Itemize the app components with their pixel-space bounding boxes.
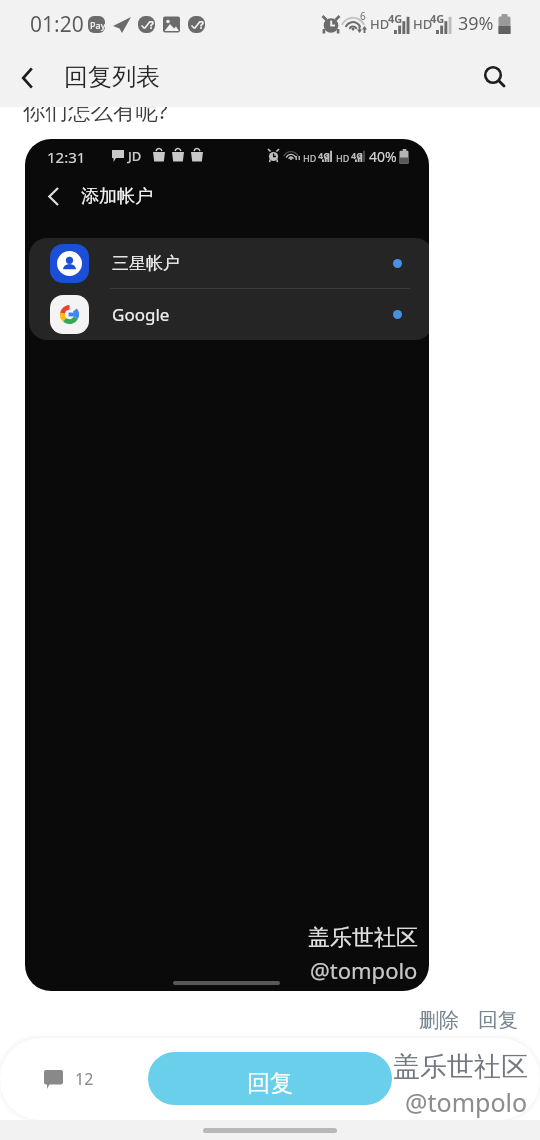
staticText: 盖乐世社区 (308, 924, 418, 952)
staticText: HD (370, 15, 390, 33)
button[interactable]: Comments (36, 1060, 102, 1098)
staticText: Pay (90, 19, 106, 31)
staticText: 回复 (247, 1069, 293, 1098)
staticText: JD (128, 147, 142, 165)
staticText: 12 (75, 1068, 94, 1090)
button[interactable]: Back (6, 56, 50, 100)
staticText: 4G (430, 11, 445, 26)
staticText: 三星帐户 (112, 253, 180, 274)
staticText: 39% (458, 11, 494, 36)
staticText: 01:20 (30, 10, 84, 39)
staticText: HD (336, 152, 350, 164)
button[interactable]: 删除 (415, 1004, 463, 1037)
staticText: 40% (369, 147, 397, 166)
staticText: 4G (318, 149, 330, 161)
staticText: 6 (360, 9, 366, 23)
staticText: 4G (388, 11, 403, 26)
staticText: 12:31 (47, 147, 86, 167)
staticText: 4G (351, 149, 363, 161)
staticText: @tompolo (405, 1085, 528, 1119)
staticText: ? (149, 18, 154, 32)
staticText: 添加帐户 (81, 185, 153, 208)
staticText: HD (303, 152, 317, 164)
button[interactable]: 三星帐户 (29, 238, 429, 289)
staticText: HD (413, 15, 433, 33)
staticText: 回复列表 (64, 62, 160, 92)
staticText: 你们怎么有呢? (23, 107, 168, 126)
staticText: ? (199, 18, 204, 32)
staticText: 盖乐世社区 (393, 1050, 528, 1084)
button[interactable]: Back (34, 177, 72, 215)
button[interactable]: 回复 (148, 1052, 392, 1105)
staticText: @tompolo (310, 955, 418, 985)
button[interactable]: Google (29, 289, 429, 340)
button[interactable]: 回复 (474, 1004, 522, 1037)
button[interactable]: Search (473, 56, 517, 100)
staticText: Google (112, 303, 170, 326)
